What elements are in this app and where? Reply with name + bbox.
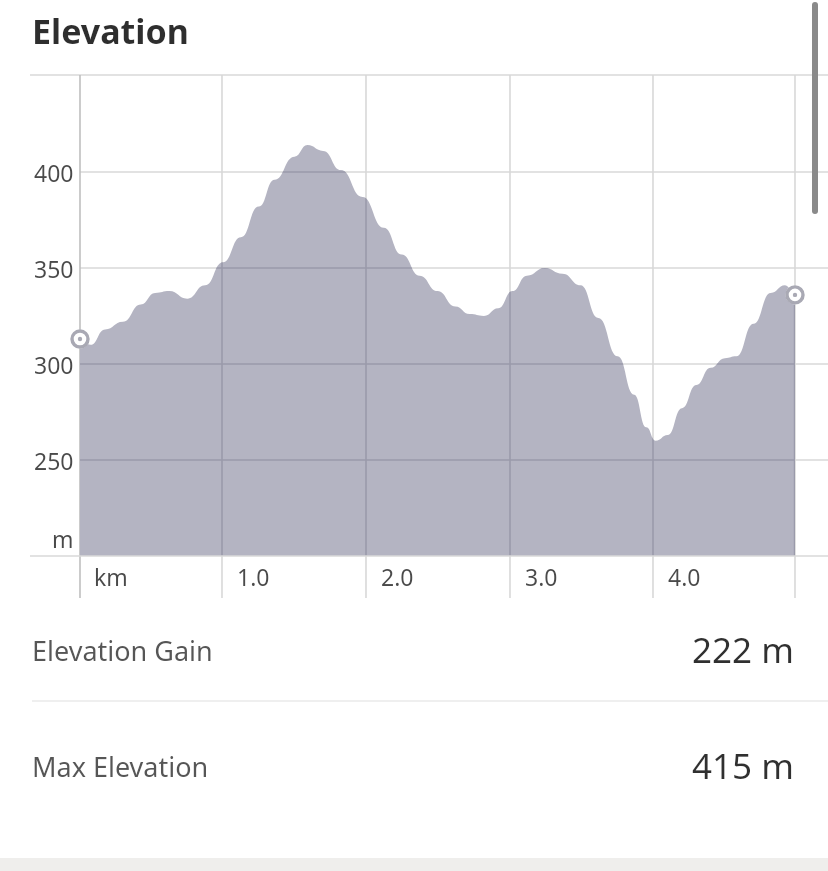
staticText: km [94,561,128,592]
staticText: 222 m [692,626,794,674]
staticText: Elevation [32,8,189,54]
staticText: 400 [34,157,74,188]
staticText: 4.0 [668,561,701,592]
staticText: 2.0 [381,561,414,592]
staticText: Elevation Gain [32,632,213,669]
other: Elevation profile chart [0,62,828,600]
staticText: m [52,523,74,554]
staticText: 350 [34,253,74,284]
staticText: 300 [34,349,74,380]
staticText: Max Elevation [32,748,209,785]
staticText: 415 m [692,742,794,790]
button[interactable]: Elevation Gain [0,600,828,700]
staticText: 1.0 [237,561,270,592]
button[interactable]: Max Elevation [0,702,828,830]
staticText: 3.0 [525,561,558,592]
staticText: 250 [34,445,74,476]
